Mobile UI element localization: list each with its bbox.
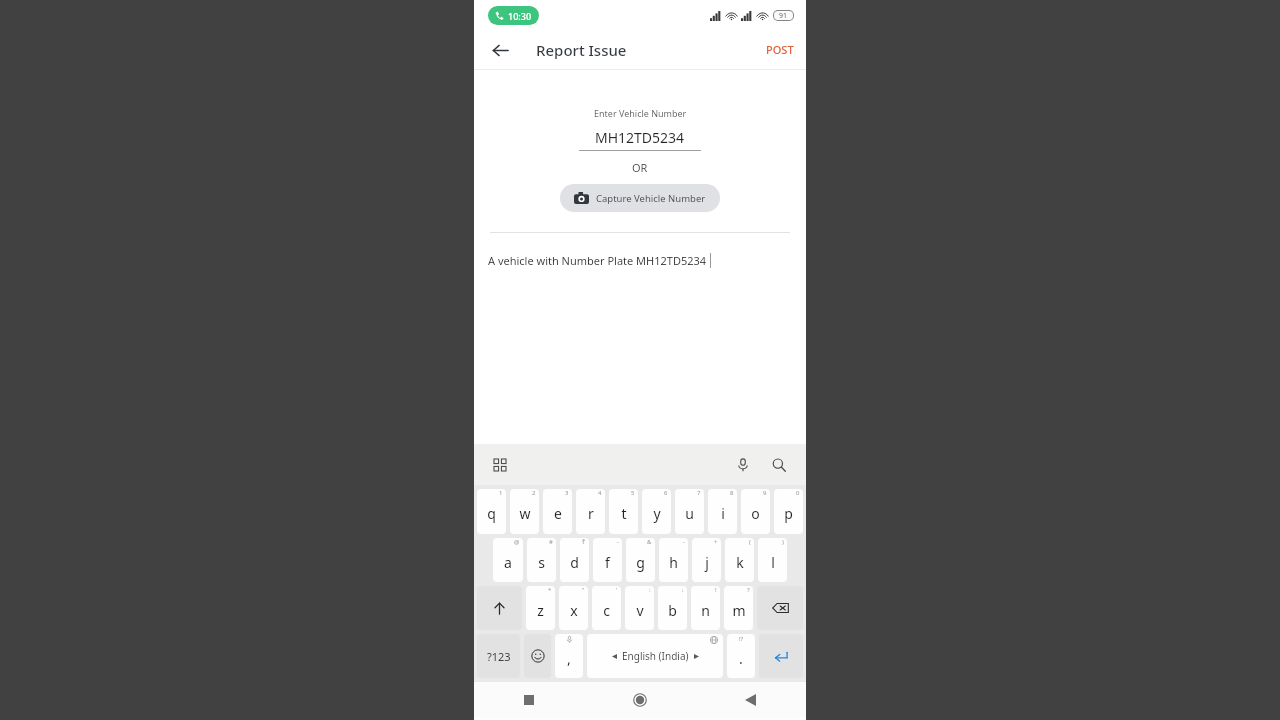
staticText: OR — [632, 160, 648, 175]
staticText: x — [570, 601, 578, 620]
staticText: 3 — [565, 489, 569, 497]
staticText: j — [705, 553, 709, 572]
staticText: g — [636, 553, 645, 572]
button[interactable]: ?123 — [477, 634, 520, 678]
button[interactable]: - — [659, 538, 688, 582]
staticText: ? — [747, 586, 750, 594]
staticText: + — [714, 538, 718, 546]
staticText: 7 — [697, 489, 701, 497]
staticText: 8 — [730, 489, 734, 497]
staticText: . — [739, 649, 743, 668]
button[interactable]: 2 — [510, 489, 539, 534]
button[interactable]: # — [527, 538, 556, 582]
button[interactable]: Search — [766, 452, 792, 478]
button[interactable]: POST — [754, 36, 806, 63]
button[interactable]: Backspace — [757, 586, 803, 630]
button[interactable]: Recents — [474, 682, 584, 718]
button[interactable]: 9 — [741, 489, 770, 534]
button[interactable]: Emoji — [524, 634, 551, 678]
button[interactable]: ' — [592, 586, 621, 630]
staticText: i — [721, 504, 725, 523]
button[interactable]: ! — [691, 586, 720, 630]
staticText: v — [636, 601, 644, 620]
staticText: 6 — [664, 489, 668, 497]
staticText: POST — [766, 42, 794, 57]
staticText: ; — [682, 586, 684, 594]
staticText: ( — [749, 538, 751, 546]
button[interactable]: Enter — [759, 634, 803, 678]
staticText: k — [736, 553, 744, 572]
staticText: r — [588, 504, 594, 523]
button[interactable]: ( — [725, 538, 754, 582]
button[interactable]: & — [626, 538, 655, 582]
button[interactable]: : — [625, 586, 654, 630]
button[interactable]: Back — [695, 682, 806, 718]
button[interactable]: ; — [658, 586, 687, 630]
staticText: & — [647, 538, 652, 546]
staticText: ' — [616, 586, 618, 594]
button[interactable]: ₹ — [560, 538, 589, 582]
staticText: @ — [514, 538, 520, 546]
button[interactable]: 5 — [609, 489, 638, 534]
staticText: , — [567, 649, 571, 668]
staticText: a — [504, 553, 512, 572]
staticText: t — [621, 504, 627, 523]
button[interactable]: - — [593, 538, 622, 582]
staticText: h — [669, 553, 678, 572]
staticText: ! — [715, 586, 717, 594]
staticText: b — [668, 601, 677, 620]
staticText: f — [605, 553, 610, 572]
staticText: MH12TD5234 — [595, 128, 685, 147]
staticText: y — [653, 504, 661, 523]
button[interactable]: ? — [724, 586, 753, 630]
staticText: 0 — [796, 489, 800, 497]
staticText: 10:30 — [508, 10, 532, 22]
button[interactable]: + — [692, 538, 721, 582]
staticText: s — [538, 553, 545, 572]
staticText: u — [685, 504, 694, 523]
staticText: w — [519, 504, 531, 523]
button[interactable]: Shift — [477, 586, 522, 630]
button[interactable]: !? — [727, 634, 755, 678]
staticText: 91 — [779, 11, 788, 20]
button[interactable]: 4 — [576, 489, 605, 534]
button[interactable]: English (India) — [587, 634, 723, 678]
staticText: !? — [739, 635, 744, 643]
button[interactable]: , — [555, 634, 583, 678]
staticText: 4 — [598, 489, 602, 497]
staticText: o — [751, 504, 760, 523]
staticText: Capture Vehicle Number — [596, 192, 706, 205]
staticText: - — [683, 538, 685, 546]
button[interactable]: ) — [758, 538, 787, 582]
staticText: - — [617, 538, 619, 546]
staticText: 5 — [631, 489, 635, 497]
button[interactable]: 6 — [642, 489, 671, 534]
staticText: : — [649, 586, 651, 594]
staticText: 9 — [763, 489, 767, 497]
button[interactable]: * — [526, 586, 555, 630]
button[interactable]: Capture Vehicle Number — [560, 184, 720, 212]
staticText: l — [771, 553, 775, 572]
staticText: " — [582, 586, 585, 594]
staticText: m — [732, 601, 746, 620]
staticText: * — [548, 586, 552, 594]
button[interactable]: Back — [484, 34, 516, 66]
staticText: ₹ — [582, 538, 586, 546]
button[interactable]: @ — [493, 538, 523, 582]
staticText: q — [487, 504, 496, 523]
button[interactable]: Voice input — [730, 452, 756, 478]
staticText: c — [603, 601, 610, 620]
button[interactable]: Keyboard options — [488, 453, 512, 477]
button[interactable]: 3 — [543, 489, 572, 534]
button[interactable]: 0 — [774, 489, 803, 534]
button[interactable]: Home — [584, 682, 695, 718]
button[interactable]: 8 — [708, 489, 737, 534]
button[interactable]: " — [559, 586, 588, 630]
staticText: Enter Vehicle Number — [594, 107, 687, 119]
button[interactable]: 1 — [477, 489, 506, 534]
staticText: English (India) — [622, 649, 689, 663]
staticText: Report Issue — [536, 40, 627, 60]
staticText: p — [784, 504, 793, 523]
button[interactable]: 7 — [675, 489, 704, 534]
staticText: 1 — [499, 489, 503, 497]
